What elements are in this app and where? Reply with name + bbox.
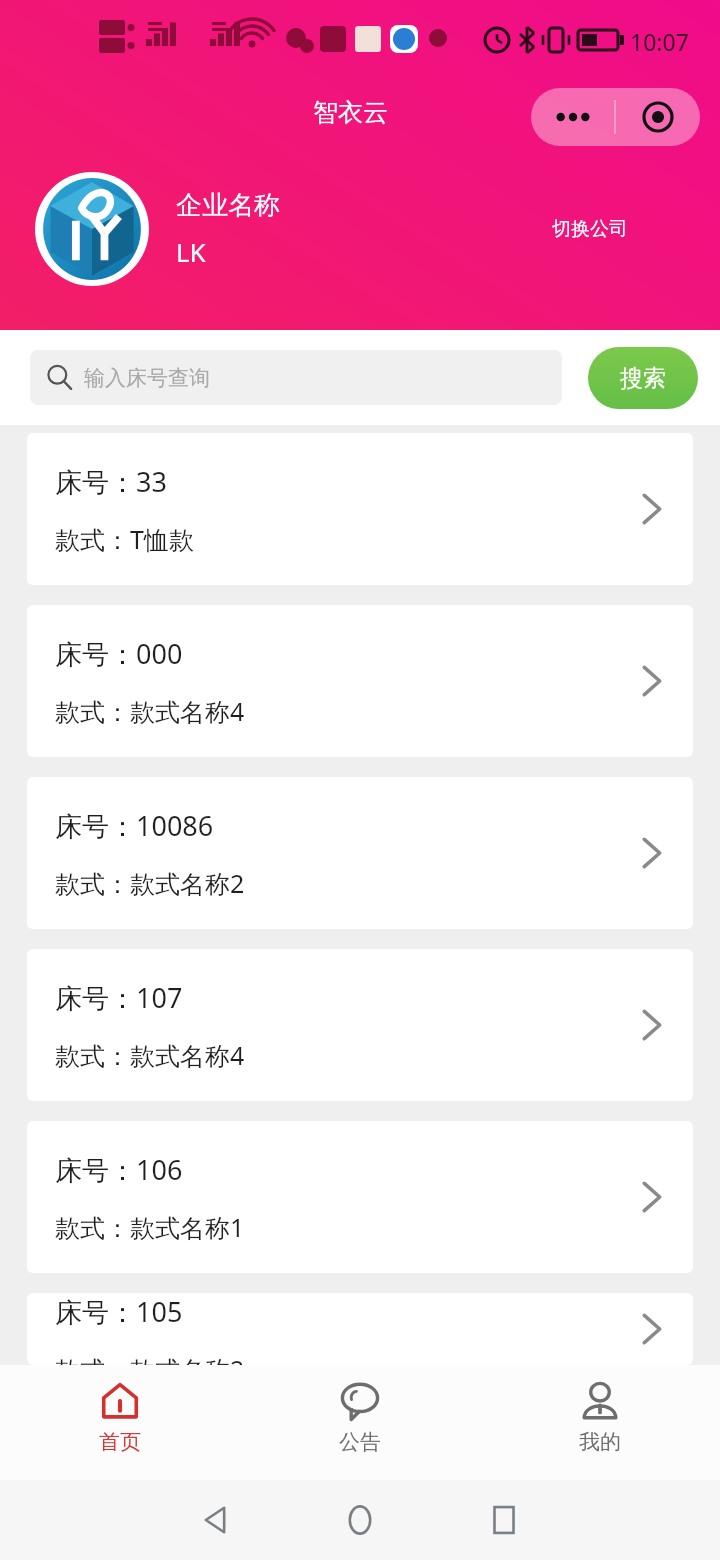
staticText: 公告 [339, 1429, 381, 1455]
staticText: 切换公司 [552, 217, 628, 241]
button[interactable]: 床号：106 [27, 1121, 693, 1273]
staticText: 款式：款式名称4 [55, 694, 245, 728]
button[interactable]: 切换公司 [534, 205, 646, 253]
button[interactable]: Recents [432, 1480, 576, 1560]
staticText: 我的 [579, 1429, 621, 1455]
staticText: 床号：106 [55, 1151, 183, 1188]
staticText: 款式：款式名称4 [55, 1038, 245, 1072]
staticText: 智衣云 [313, 97, 388, 128]
staticText: 款式：款式名称2 [55, 866, 245, 900]
button[interactable]: Home [288, 1480, 432, 1560]
button[interactable]: 床号：107 [27, 949, 693, 1101]
button[interactable]: 床号：33 [27, 433, 693, 585]
button[interactable]: Back [144, 1480, 288, 1560]
button[interactable]: 我的 [480, 1365, 720, 1480]
staticText: 床号：000 [55, 635, 183, 672]
button[interactable]: 床号：10086 [27, 777, 693, 929]
button[interactable]: More [531, 88, 614, 146]
staticText: 款式：款式名称1 [55, 1210, 245, 1244]
staticText: 床号：107 [55, 979, 183, 1016]
staticText: 10:07 [630, 26, 689, 57]
button[interactable]: 床号：105 [27, 1293, 693, 1365]
button[interactable]: 首页 [0, 1365, 240, 1480]
button[interactable]: 搜索 [588, 347, 698, 409]
staticText: 企业名称 [176, 189, 280, 222]
staticText: 款式：T恤款 [55, 522, 194, 556]
button[interactable]: 床号：000 [27, 605, 693, 757]
staticText: 首页 [99, 1429, 141, 1455]
staticText: 床号：33 [55, 463, 167, 500]
button[interactable]: Target [616, 88, 700, 146]
staticText: LK [176, 234, 206, 269]
staticText: 款式：款式名称2 [55, 1352, 245, 1365]
button[interactable]: 输入床号查询 [30, 350, 562, 405]
staticText: 床号：10086 [55, 807, 214, 844]
staticText: 输入床号查询 [84, 365, 210, 391]
button[interactable]: 公告 [240, 1365, 480, 1480]
staticText: 床号：105 [55, 1293, 183, 1330]
staticText: 搜索 [620, 364, 666, 393]
